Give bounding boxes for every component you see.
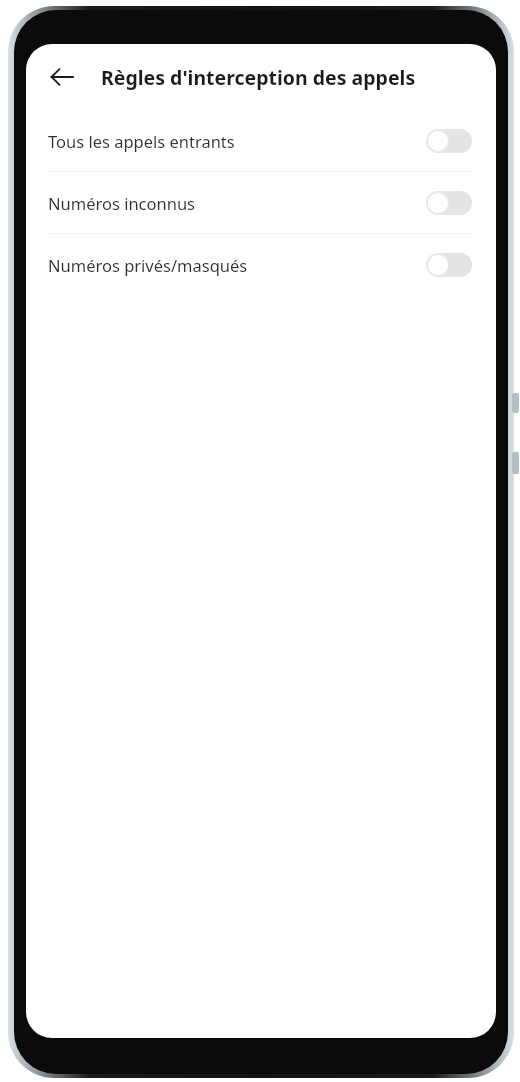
button[interactable]: Retour (40, 55, 84, 99)
button[interactable]: Numéros privés/masqués (26, 234, 496, 295)
button[interactable]: Numéros inconnus (426, 191, 472, 215)
staticText: Règles d'interception des appels (101, 64, 416, 91)
staticText: Numéros privés/masqués (48, 254, 248, 276)
staticText: Tous les appels entrants (48, 130, 235, 152)
button[interactable]: Tous les appels entrants (26, 110, 496, 171)
button[interactable]: Numéros privés/masqués (426, 253, 472, 277)
button[interactable]: Numéros inconnus (26, 172, 496, 233)
button[interactable]: Tous les appels entrants (426, 129, 472, 153)
staticText: Numéros inconnus (48, 192, 195, 214)
